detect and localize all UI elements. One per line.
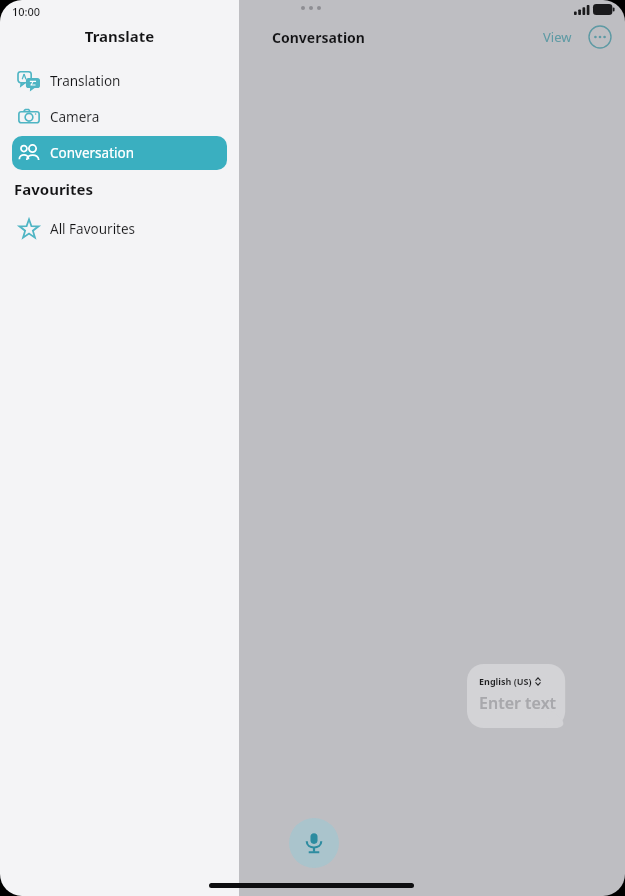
button[interactable]: Record audio (289, 818, 339, 868)
button[interactable]: All Favourites (12, 212, 227, 246)
button[interactable]: Conversation (12, 136, 227, 170)
staticText: Enter text (479, 692, 557, 714)
staticText: Conversation (272, 28, 365, 47)
button[interactable]: English (US) (467, 664, 572, 728)
staticText: Camera (50, 108, 100, 126)
staticText: English (US) (479, 675, 532, 687)
staticText: Conversation (50, 144, 134, 162)
staticText: View (543, 28, 572, 46)
staticText: 10:00 (12, 4, 41, 19)
button[interactable]: Camera (12, 100, 227, 134)
button[interactable]: View (539, 24, 576, 50)
button[interactable]: More options (588, 25, 612, 49)
button[interactable]: Translation (12, 64, 227, 98)
staticText: Translation (50, 72, 121, 90)
staticText: All Favourites (50, 220, 136, 238)
staticText: Favourites (14, 179, 94, 199)
staticText: Translate (0, 26, 239, 46)
